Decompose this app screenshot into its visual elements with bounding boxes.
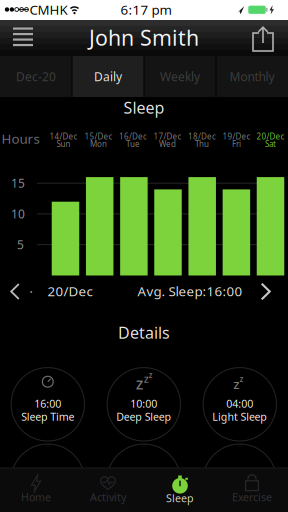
staticText: 10:00 <box>130 396 157 411</box>
staticText: Tue <box>126 139 140 149</box>
staticText: Home <box>21 490 51 504</box>
staticText: 04:00 <box>226 396 253 411</box>
button[interactable] <box>255 281 275 301</box>
staticText: Details <box>118 322 170 343</box>
staticText: Avg. Sleep:16:00 <box>137 282 242 300</box>
button[interactable]: Dec-20 <box>0 56 72 97</box>
staticText: Sleep <box>166 491 194 505</box>
staticText: 5 <box>17 237 24 252</box>
staticText: Activity <box>90 490 126 504</box>
button[interactable]: Exercise <box>216 468 288 512</box>
staticText: 16:00 <box>34 396 61 411</box>
staticText: 20/Dec <box>47 282 92 300</box>
staticText: z <box>144 371 149 386</box>
staticText: Wed <box>159 139 176 149</box>
staticText: Sleep Time <box>21 409 74 424</box>
staticText: z <box>239 373 243 384</box>
staticText: 19/Dec <box>222 131 250 142</box>
staticText: Dec-20 <box>16 68 56 84</box>
staticText: CMHK <box>29 1 67 18</box>
button[interactable]: Activity <box>72 468 144 512</box>
staticText: Sleep <box>123 97 164 118</box>
button[interactable]: Daily <box>72 56 144 97</box>
staticText: 15/Dec <box>84 131 112 142</box>
staticText: Thu <box>195 139 209 149</box>
button[interactable]: z <box>202 366 278 442</box>
staticText: Hours <box>1 130 39 147</box>
staticText: Weekly <box>160 68 200 84</box>
staticText: z <box>149 370 153 380</box>
button[interactable] <box>6 21 40 53</box>
button[interactable] <box>248 22 278 56</box>
staticText: Deep Sleep <box>116 409 171 424</box>
staticText: 20/Dec <box>256 131 284 142</box>
staticText: 18/Dec <box>188 131 216 142</box>
staticText: Monthly <box>229 68 274 84</box>
button[interactable]: Sleep <box>144 468 216 512</box>
staticText: 10 <box>11 206 25 222</box>
staticText: Mon <box>90 139 107 149</box>
staticText: Daily <box>94 68 122 84</box>
staticText: Sat <box>265 139 276 149</box>
staticText: 16/Dec <box>119 131 147 142</box>
button[interactable]: Monthly <box>216 56 288 97</box>
button[interactable] <box>5 281 25 301</box>
staticText: John Smith <box>89 23 199 52</box>
staticText: Light Sleep <box>212 409 267 424</box>
button[interactable]: z <box>106 366 182 442</box>
button[interactable]: Weekly <box>144 56 216 97</box>
staticText: z <box>136 373 144 394</box>
staticText: Sun <box>56 139 70 149</box>
staticText: z <box>233 375 239 393</box>
staticText: Fri <box>232 139 241 149</box>
button[interactable]: 16:00 <box>10 366 86 442</box>
staticText: 6:17 pm <box>120 1 171 18</box>
staticText: 17/Dec <box>153 131 181 142</box>
button[interactable]: Home <box>0 468 72 512</box>
staticText: 15 <box>11 175 25 191</box>
staticText: Exercise <box>232 490 272 504</box>
staticText: 14/Dec <box>49 131 77 142</box>
